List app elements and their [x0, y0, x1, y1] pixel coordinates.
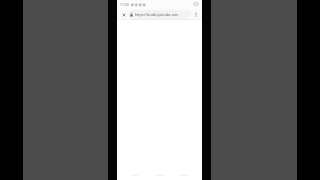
staticText: 11:43: [120, 2, 129, 7]
staticText: https://studio.youtube.com: [135, 12, 179, 17]
button[interactable]: Recents: [178, 171, 190, 180]
button[interactable]: More options: [191, 10, 200, 19]
button[interactable]: https://studio.youtube.com: [128, 10, 191, 19]
button[interactable]: Home: [154, 171, 166, 180]
button[interactable]: Back: [129, 171, 141, 180]
button[interactable]: Close: [119, 10, 128, 19]
